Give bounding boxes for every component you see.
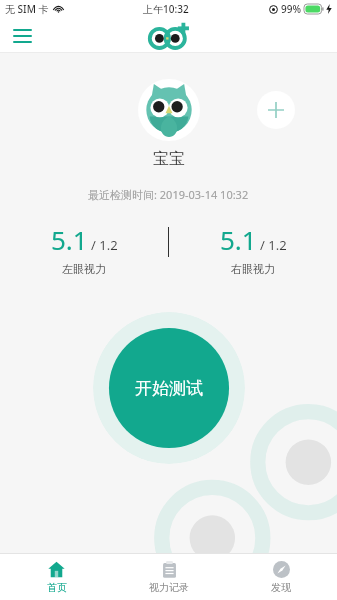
button[interactable]: Profile avatar — [138, 79, 200, 141]
button[interactable]: Menu — [6, 20, 38, 52]
staticText: 最近检测时间: 2019-03-14 10:32 — [88, 187, 249, 202]
staticText: / 1.2 — [91, 236, 118, 254]
staticText: 99% — [281, 2, 301, 16]
staticText: 宝宝 — [153, 149, 185, 169]
button[interactable]: 视力记录 — [113, 554, 225, 600]
staticText: 视力记录 — [149, 581, 189, 594]
staticText: 左眼视力 — [62, 262, 106, 276]
staticText: 上午10:32 — [143, 2, 189, 16]
button[interactable]: 首页 — [0, 554, 113, 600]
staticText: / 1.2 — [260, 236, 287, 254]
staticText: 开始测试 — [135, 378, 203, 399]
staticText: 发现 — [271, 581, 291, 594]
staticText: 首页 — [47, 581, 67, 594]
button[interactable]: 发现 — [225, 554, 337, 600]
staticText: 无 SIM 卡 — [5, 2, 49, 16]
staticText: 右眼视力 — [231, 262, 275, 276]
staticText: 5.1 — [220, 222, 257, 257]
button[interactable]: 开始测试 — [93, 312, 245, 464]
button[interactable]: Add profile — [257, 91, 295, 129]
staticText: 5.1 — [51, 222, 88, 257]
